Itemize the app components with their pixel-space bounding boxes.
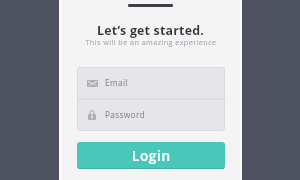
staticText: Password	[105, 109, 145, 120]
button[interactable]: Login	[77, 142, 225, 169]
button[interactable]: Email	[77, 67, 225, 99]
button[interactable]: Password	[77, 99, 225, 131]
other: Password	[88, 110, 96, 120]
other: Email	[87, 80, 98, 87]
staticText: This will be an amazing experience	[85, 37, 217, 47]
staticText: Email	[105, 77, 128, 88]
staticText: Let’s get started.	[97, 22, 204, 39]
staticText: Login	[132, 146, 171, 165]
